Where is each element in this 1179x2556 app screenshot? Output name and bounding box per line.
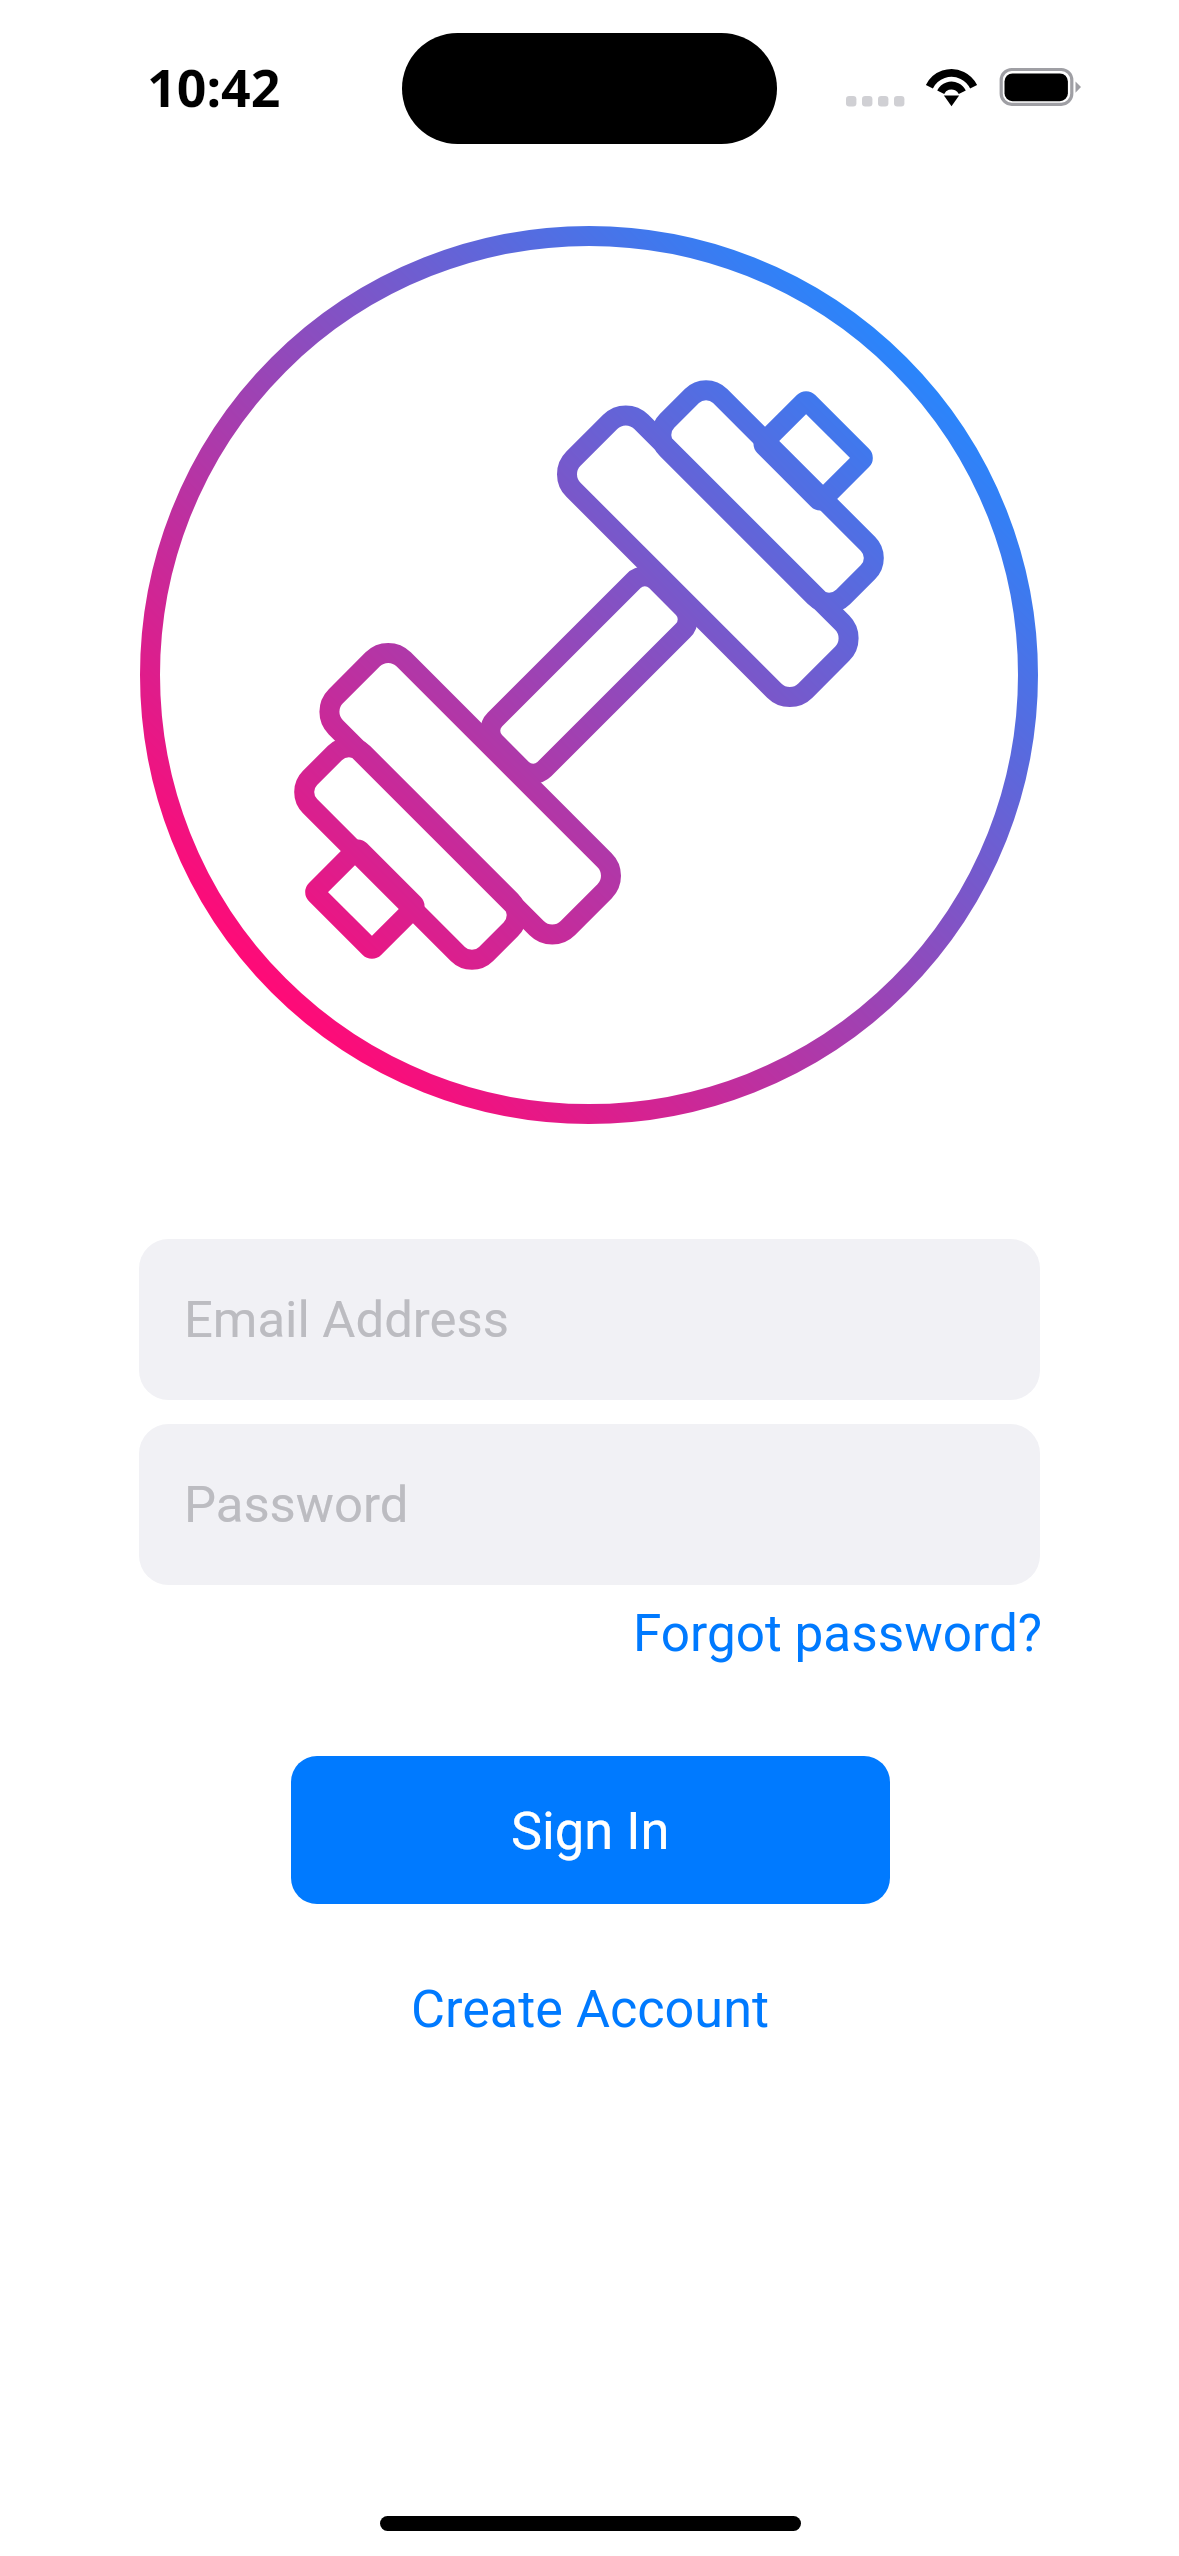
staticText: Sign In [511,1800,670,1861]
staticText: 10:42 [147,51,281,122]
button[interactable]: Sign In [291,1756,890,1904]
staticText: Email Address [184,1290,509,1350]
staticText: Create Account [411,1979,770,2040]
button[interactable]: Forgot password? [623,1595,1053,1671]
button[interactable]: Create Account [397,1971,784,2048]
staticText: Password [184,1475,409,1535]
button[interactable]: Email Address [139,1239,1040,1400]
button[interactable]: Password [139,1424,1040,1585]
staticText: Forgot password? [633,1603,1043,1663]
